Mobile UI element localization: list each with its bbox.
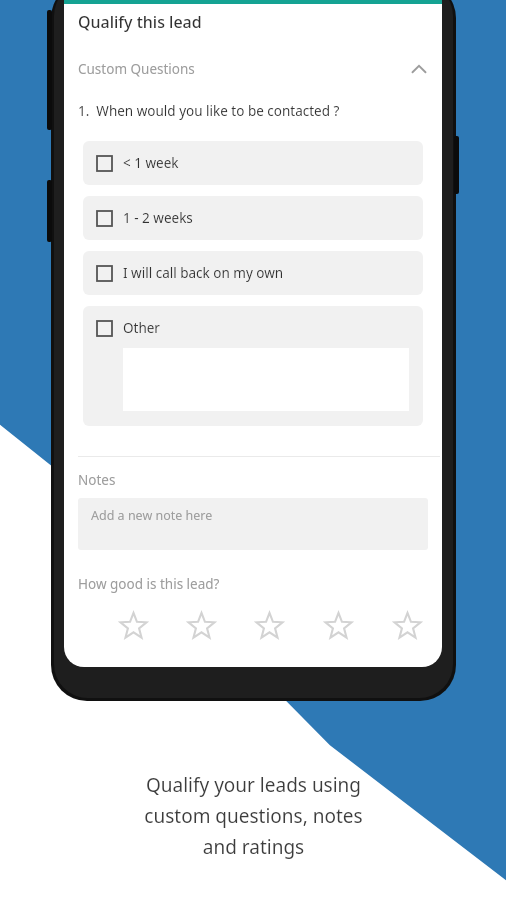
staticText: Notes — [78, 471, 116, 489]
button[interactable]: Other — [83, 306, 423, 426]
staticText: Qualify this lead — [78, 11, 202, 33]
staticText: < 1 week — [123, 154, 179, 172]
button[interactable]: Add a new note here — [78, 498, 428, 550]
button[interactable]: Rate 5 of 5 stars — [388, 606, 426, 644]
staticText: Add a new note here — [91, 507, 213, 524]
other: Collapse custom questions — [408, 58, 430, 80]
staticText: 1. When would you like to be contacted ? — [78, 102, 340, 120]
button[interactable]: Rate 1 of 5 stars — [114, 606, 152, 644]
staticText: Qualify your leads using custom question… — [144, 772, 363, 860]
button[interactable]: Rate 2 of 5 stars — [182, 606, 220, 644]
staticText: I will call back on my own — [123, 264, 284, 282]
staticText: Custom Questions — [78, 60, 195, 78]
button[interactable]: < 1 week — [83, 141, 423, 185]
staticText: 1 - 2 weeks — [123, 209, 193, 227]
button[interactable]: 1 - 2 weeks — [83, 196, 423, 240]
staticText: Other — [123, 319, 160, 337]
button[interactable]: Rate 3 of 5 stars — [250, 606, 288, 644]
staticText: How good is this lead? — [78, 575, 220, 593]
button[interactable]: I will call back on my own — [83, 251, 423, 295]
button[interactable]: Custom Questions — [64, 55, 442, 83]
button[interactable]: Rate 4 of 5 stars — [319, 606, 357, 644]
